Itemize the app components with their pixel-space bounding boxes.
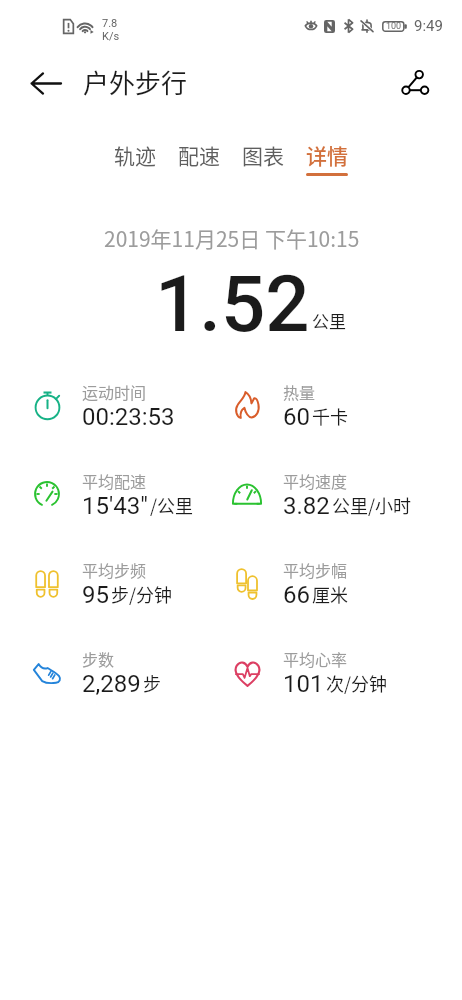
button[interactable]: 步数	[82, 647, 161, 698]
staticText: 100	[386, 21, 402, 32]
staticText: 66	[283, 581, 310, 609]
button[interactable]: 平均步幅	[228, 565, 266, 603]
staticText: 平均步频	[82, 558, 147, 581]
staticText: 2019年11月25日 下午10:15	[104, 223, 360, 253]
staticText: 户外步行	[83, 63, 188, 101]
staticText: 次/分钟	[326, 670, 388, 696]
staticText: 千卡	[312, 403, 348, 429]
staticText: 平均速度	[283, 469, 348, 492]
staticText: 图表	[242, 140, 284, 170]
staticText: 平均配速	[82, 469, 147, 492]
button[interactable]: 详情	[295, 140, 359, 176]
button[interactable]: 平均步频	[82, 558, 173, 609]
button[interactable]: Back	[20, 58, 72, 108]
staticText: 步数	[82, 647, 115, 670]
staticText: 公里	[312, 308, 346, 333]
button[interactable]: 热量	[228, 386, 266, 424]
button[interactable]: 平均步幅	[283, 558, 348, 609]
staticText: 7.8	[102, 17, 118, 30]
staticText: 步/分钟	[111, 581, 173, 607]
staticText: 公里/小时	[332, 492, 412, 518]
staticText: 热量	[283, 380, 316, 403]
staticText: 9:49	[414, 17, 443, 35]
staticText: K/s	[102, 30, 120, 43]
staticText: 平均步幅	[283, 558, 348, 581]
button[interactable]: 图表	[231, 140, 295, 176]
button[interactable]: 平均配速	[28, 475, 66, 513]
staticText: 详情	[306, 140, 348, 170]
button[interactable]: 平均速度	[228, 475, 266, 513]
staticText: 1.52	[155, 259, 310, 350]
button[interactable]: 运动时间	[82, 380, 175, 431]
button[interactable]: 运动时间	[28, 386, 66, 424]
staticText: 轨迹	[114, 140, 156, 170]
staticText: 3.82	[283, 492, 330, 520]
staticText: 运动时间	[82, 380, 147, 403]
staticText: 平均心率	[283, 647, 348, 670]
staticText: 60	[283, 403, 310, 431]
staticText: /公里	[150, 492, 194, 518]
button[interactable]: 配速	[167, 140, 231, 176]
staticText: 步	[143, 670, 161, 696]
staticText: 2,289	[82, 670, 141, 698]
staticText: 95	[82, 581, 109, 609]
button[interactable]: 轨迹	[103, 140, 167, 176]
button[interactable]: 平均配速	[82, 469, 194, 520]
staticText: 00:23:53	[82, 403, 175, 431]
button[interactable]: 平均心率	[228, 654, 266, 692]
button[interactable]: 步数	[28, 654, 66, 692]
button[interactable]: Share	[390, 58, 440, 108]
staticText: 配速	[178, 140, 220, 170]
button[interactable]: 热量	[283, 380, 348, 431]
staticText: 厘米	[312, 581, 348, 607]
button[interactable]: 平均步频	[28, 565, 66, 603]
button[interactable]: 平均心率	[283, 647, 388, 698]
button[interactable]: 平均速度	[283, 469, 412, 520]
staticText: 101	[283, 670, 324, 698]
staticText: 15'43"	[82, 492, 148, 520]
